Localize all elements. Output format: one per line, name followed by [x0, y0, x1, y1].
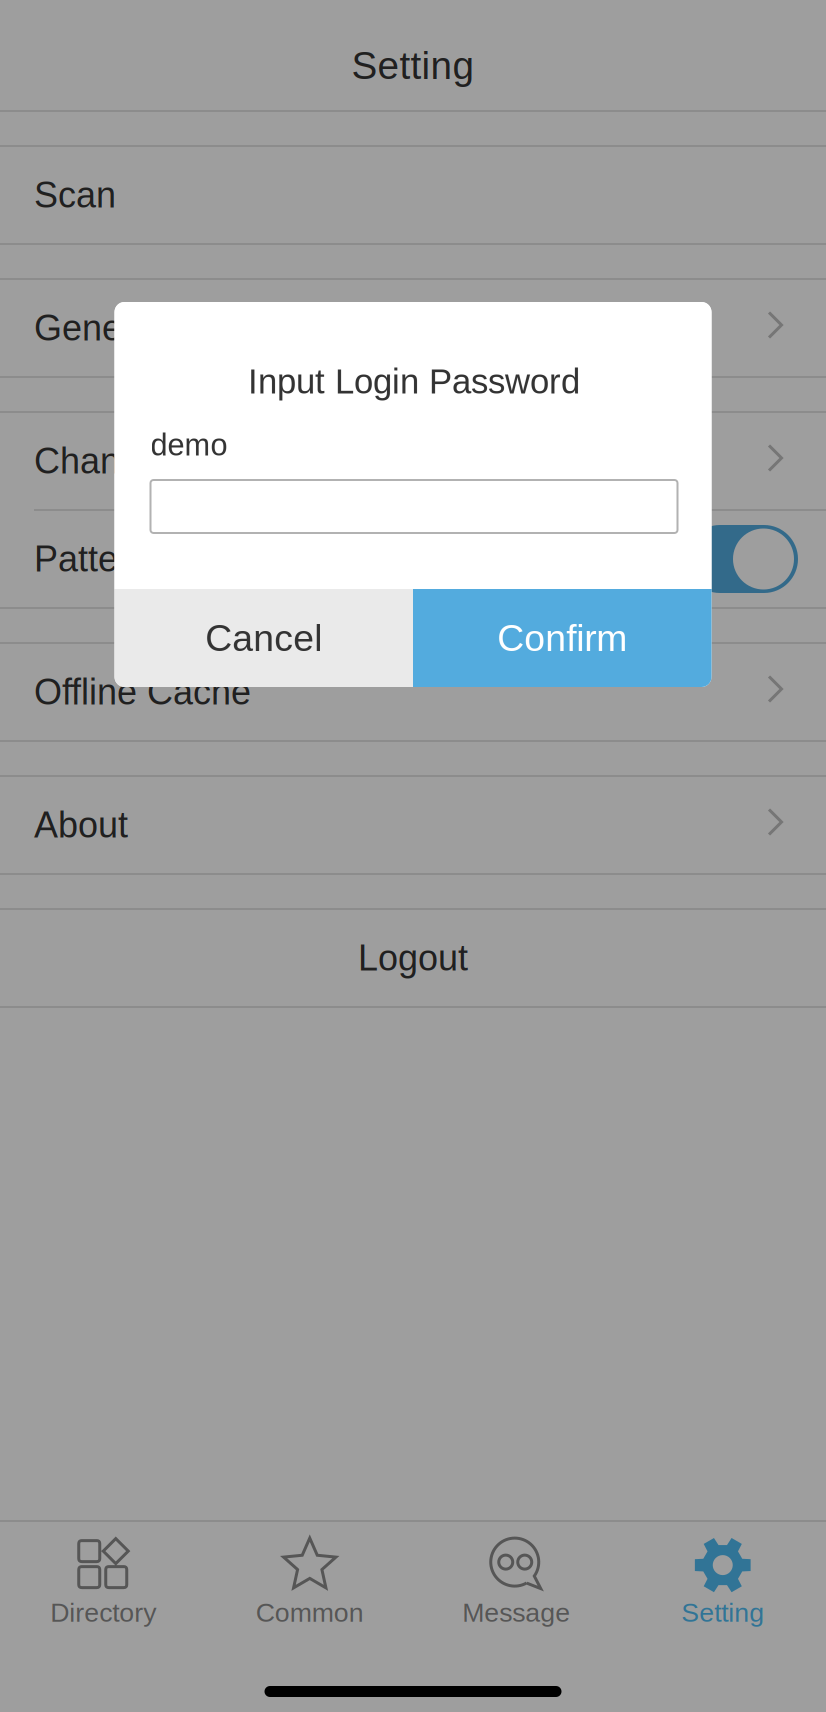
staticText: demo: [150, 428, 227, 462]
staticText: About: [34, 805, 128, 845]
staticText: Confirm: [497, 617, 627, 659]
button[interactable]: Message: [413, 1522, 619, 1627]
button[interactable]: Setting: [619, 1522, 826, 1627]
staticText: Setting: [351, 44, 474, 87]
staticText: Cancel: [205, 617, 322, 659]
staticText: Change Password: [34, 441, 328, 481]
button[interactable]: About: [0, 777, 826, 873]
button[interactable]: Confirm: [413, 589, 711, 687]
button[interactable]: Pattern Lock: [0, 511, 826, 607]
staticText: Directory: [50, 1598, 156, 1627]
staticText: Common: [256, 1598, 364, 1627]
button[interactable]: Cancel: [114, 589, 413, 687]
staticText: Pattern Lock: [34, 539, 236, 579]
staticText: General: [34, 308, 162, 348]
button[interactable]: Logout: [0, 910, 826, 1006]
staticText: Offline Cache: [34, 672, 251, 712]
button[interactable]: Common: [206, 1522, 413, 1627]
staticText: Scan: [34, 175, 116, 215]
staticText: Setting: [681, 1598, 764, 1627]
staticText: Input Login Password: [248, 362, 580, 401]
button[interactable]: General: [0, 280, 826, 376]
staticText: Logout: [358, 938, 468, 978]
button[interactable]: Directory: [0, 1522, 206, 1627]
button[interactable]: Offline Cache: [0, 644, 826, 740]
button[interactable]: Change Password: [0, 413, 826, 509]
button[interactable]: Scan: [0, 147, 826, 243]
staticText: Message: [462, 1598, 570, 1627]
